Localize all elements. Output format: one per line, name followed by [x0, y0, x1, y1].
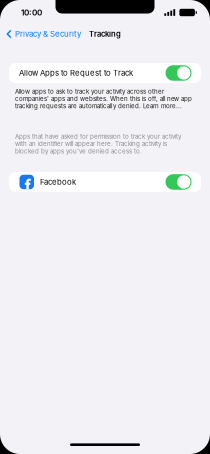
button[interactable]: Privacy & Security — [0, 27, 81, 41]
staticText: Apps that have asked for permission to t… — [15, 133, 181, 155]
button[interactable]: Allow Apps to Request to Track — [9, 63, 201, 83]
staticText: Allow Apps to Request to Track — [19, 68, 133, 78]
button[interactable]: Facebook — [9, 172, 201, 192]
staticText: 10:00 — [21, 8, 42, 17]
staticText: Privacy & Security — [15, 29, 81, 39]
staticText: Allow apps to ask to track your activity… — [15, 88, 192, 110]
staticText: Tracking — [89, 29, 121, 39]
staticText: Facebook — [40, 177, 76, 187]
